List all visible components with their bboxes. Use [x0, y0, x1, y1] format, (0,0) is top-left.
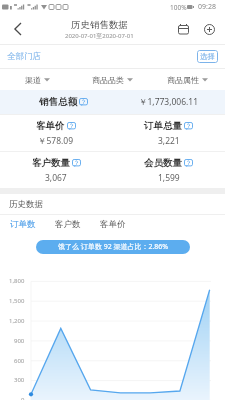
button[interactable]: 客单价: [90, 215, 135, 234]
staticText: 1,800: [9, 277, 25, 285]
staticText: 历史销售数据: [71, 19, 128, 31]
staticText: 2020-07-01至2020-07-01: [65, 32, 134, 40]
staticText: 客户数量: [32, 157, 70, 169]
staticText: 客单价: [36, 120, 65, 132]
staticText: 历史数据: [9, 199, 43, 210]
staticText: ￥578.09: [38, 135, 74, 147]
button[interactable]: 订单数: [0, 215, 45, 234]
staticText: 客户数: [55, 219, 81, 230]
staticText: 全部门店: [7, 51, 41, 62]
staticText: 3,221: [158, 135, 180, 147]
button[interactable]: 商品品类: [75, 69, 150, 90]
staticText: 3,067: [45, 172, 67, 184]
button[interactable]: 客户数: [45, 215, 90, 234]
staticText: 会员数量: [144, 157, 182, 169]
staticText: 100%: [170, 3, 187, 12]
staticText: 渠道: [25, 75, 41, 85]
staticText: 订单总量: [144, 120, 182, 132]
button[interactable]: Add: [196, 14, 222, 44]
staticText: 09:28: [198, 2, 216, 12]
staticText: 商品品类: [92, 75, 124, 85]
staticText: 900: [14, 337, 25, 345]
staticText: 1,500: [9, 297, 25, 305]
staticText: 订单数: [10, 219, 36, 230]
button[interactable]: Back: [0, 14, 34, 44]
staticText: 300: [14, 376, 25, 384]
staticText: 1,599: [158, 172, 180, 184]
staticText: 饿了么 订单数 92 渠道占比：2.86%: [58, 242, 169, 252]
staticText: 客单价: [100, 219, 126, 230]
button[interactable]: 选择: [197, 50, 218, 63]
button[interactable]: 商品属性: [150, 69, 225, 90]
staticText: 1,200: [9, 317, 25, 325]
button[interactable]: 渠道: [0, 69, 75, 90]
staticText: 选择: [200, 52, 215, 61]
staticText: 600: [14, 357, 25, 365]
button[interactable]: 饿了么 订单数 92 渠道占比：2.86%: [36, 240, 190, 254]
staticText: 销售总额: [39, 96, 77, 108]
button[interactable]: Calendar: [170, 14, 196, 44]
staticText: 商品属性: [167, 75, 199, 85]
staticText: ￥1,773,006.11: [139, 96, 199, 108]
staticText: 0: [21, 396, 25, 400]
